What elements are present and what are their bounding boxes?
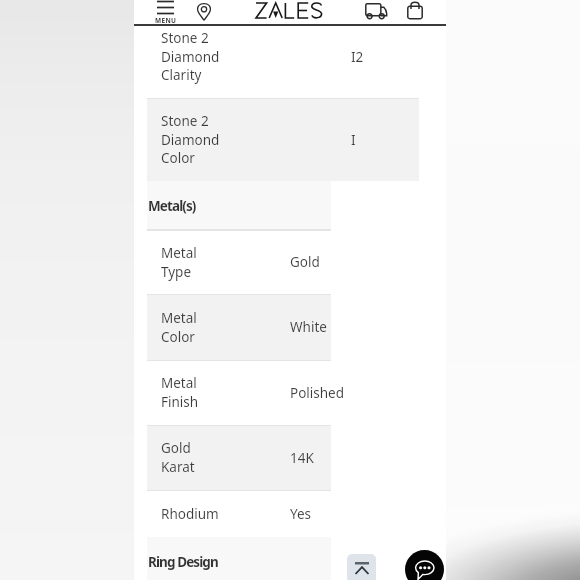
staticText: Polished xyxy=(290,384,345,402)
button[interactable]: Shopping bag xyxy=(403,0,427,24)
button[interactable]: Zales home xyxy=(256,3,322,18)
staticText: Gold xyxy=(290,253,320,271)
button[interactable]: Metal Color xyxy=(147,294,331,360)
staticText: Rhodium xyxy=(161,505,219,523)
button[interactable]: Stone 2 Diamond Color xyxy=(147,98,419,181)
staticText: Gold Karat xyxy=(161,439,195,475)
staticText: White xyxy=(290,318,327,336)
staticText: Metal Color xyxy=(161,309,197,345)
staticText: Stone 2 Diamond Color xyxy=(161,112,220,166)
button[interactable]: Rhodium xyxy=(147,490,331,537)
staticText: Metal(s) xyxy=(148,197,196,215)
staticText: Yes xyxy=(290,505,312,523)
button[interactable]: Track order xyxy=(361,0,391,24)
staticText: Metal Type xyxy=(161,244,197,280)
staticText: Stone 2 Diamond Clarity xyxy=(161,29,220,83)
button[interactable]: Gold Karat xyxy=(147,425,331,490)
staticText: Metal Finish xyxy=(161,374,199,410)
staticText: I xyxy=(351,131,356,149)
button[interactable]: Stone 2 Diamond Clarity xyxy=(147,15,419,98)
button[interactable]: Scroll to top xyxy=(347,554,376,580)
button[interactable]: Store locator xyxy=(193,0,215,22)
button[interactable]: Chat xyxy=(405,550,444,580)
staticText: 14K xyxy=(290,449,314,467)
staticText: I2 xyxy=(351,48,364,66)
button[interactable]: Metal Finish xyxy=(147,360,331,425)
button[interactable]: Menu xyxy=(154,0,178,24)
staticText: MENU xyxy=(155,16,177,25)
button[interactable]: Metal Type xyxy=(147,230,331,294)
staticText: Ring Design xyxy=(148,553,218,571)
